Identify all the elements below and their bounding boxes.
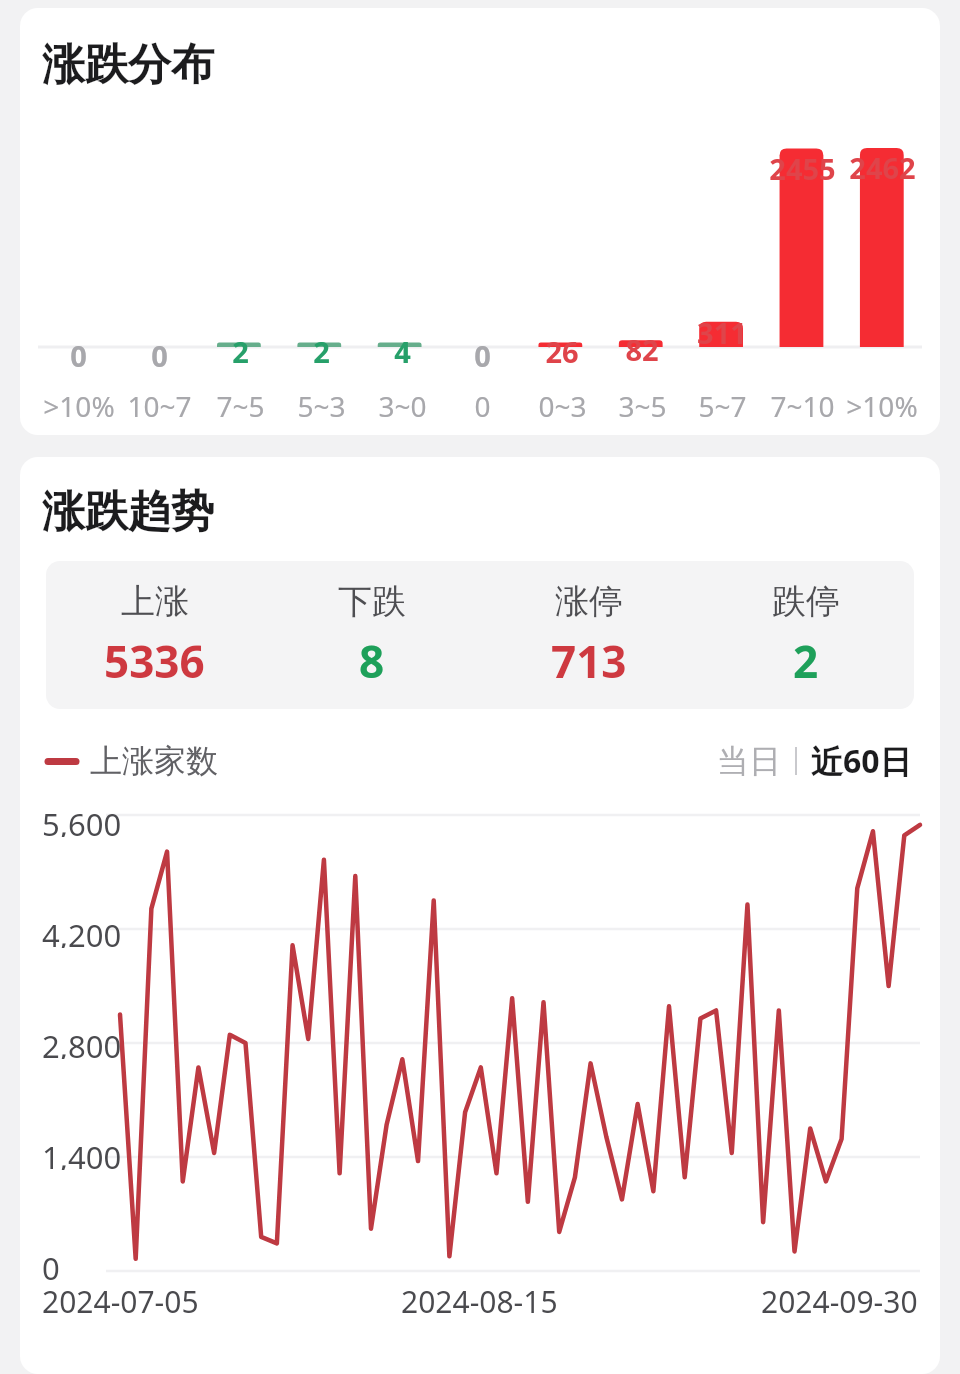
- staticText: 0: [70, 336, 87, 375]
- button[interactable]: 下跌: [263, 561, 480, 709]
- button[interactable]: 0: [119, 92, 200, 435]
- staticText: 2: [313, 332, 330, 371]
- button[interactable]: 涨跌分布: [20, 8, 940, 435]
- staticText: 2024-09-30: [761, 1281, 918, 1322]
- button[interactable]: 当日: [713, 737, 785, 785]
- staticText: 8: [359, 631, 385, 691]
- button[interactable]: 上涨: [46, 561, 263, 709]
- staticText: 7~5: [216, 387, 265, 425]
- button[interactable]: 0: [38, 92, 119, 435]
- button[interactable]: 近60日: [807, 735, 916, 787]
- button[interactable]: 涨停: [480, 561, 697, 709]
- staticText: 0: [42, 1247, 60, 1281]
- staticText: 0: [474, 336, 491, 375]
- button[interactable]: 跌停: [697, 561, 914, 709]
- staticText: 4,200: [42, 914, 122, 948]
- staticText: 2462: [849, 148, 916, 187]
- staticText: 5,600: [42, 803, 122, 837]
- staticText: 1,400: [42, 1136, 122, 1170]
- staticText: 3~5: [618, 387, 667, 425]
- button[interactable]: 82: [602, 92, 682, 435]
- staticText: 713: [551, 631, 627, 691]
- staticText: 82: [625, 330, 659, 369]
- staticText: 涨跌分布: [42, 38, 214, 92]
- staticText: 5~3: [297, 387, 346, 425]
- button[interactable]: 2462: [842, 92, 922, 435]
- staticText: >10%: [846, 387, 918, 425]
- staticText: 2: [793, 631, 819, 691]
- staticText: 涨跌趋势: [42, 485, 214, 539]
- staticText: 4: [394, 332, 411, 371]
- button[interactable]: 2: [200, 92, 281, 435]
- staticText: 0~3: [538, 387, 587, 425]
- staticText: 2024-07-05: [42, 1281, 199, 1322]
- staticText: 5~7: [698, 387, 747, 425]
- staticText: 26: [545, 332, 579, 371]
- button[interactable]: 2455: [762, 92, 842, 435]
- staticText: 2455: [769, 149, 836, 188]
- staticText: 上涨: [121, 580, 189, 623]
- staticText: 7~10: [770, 387, 835, 425]
- staticText: 2,800: [42, 1025, 122, 1059]
- staticText: 跌停: [772, 580, 840, 623]
- staticText: 下跌: [338, 580, 406, 623]
- button[interactable]: 0: [442, 92, 522, 435]
- staticText: 2: [232, 332, 249, 371]
- staticText: 当日: [717, 741, 781, 781]
- staticText: 10~7: [127, 387, 192, 425]
- button[interactable]: 26: [522, 92, 602, 435]
- staticText: 上涨家数: [90, 741, 218, 781]
- staticText: 2024-08-15: [401, 1281, 558, 1322]
- staticText: 涨停: [555, 580, 623, 623]
- staticText: >10%: [43, 387, 115, 425]
- button[interactable]: 2: [281, 92, 362, 435]
- staticText: 5336: [104, 631, 205, 691]
- button[interactable]: 311: [682, 92, 762, 435]
- staticText: 3~0: [378, 387, 427, 425]
- staticText: 0: [474, 387, 491, 425]
- staticText: 近60日: [811, 739, 912, 783]
- button[interactable]: 4: [362, 92, 442, 435]
- staticText: 0: [151, 336, 168, 375]
- staticText: 311: [697, 313, 747, 352]
